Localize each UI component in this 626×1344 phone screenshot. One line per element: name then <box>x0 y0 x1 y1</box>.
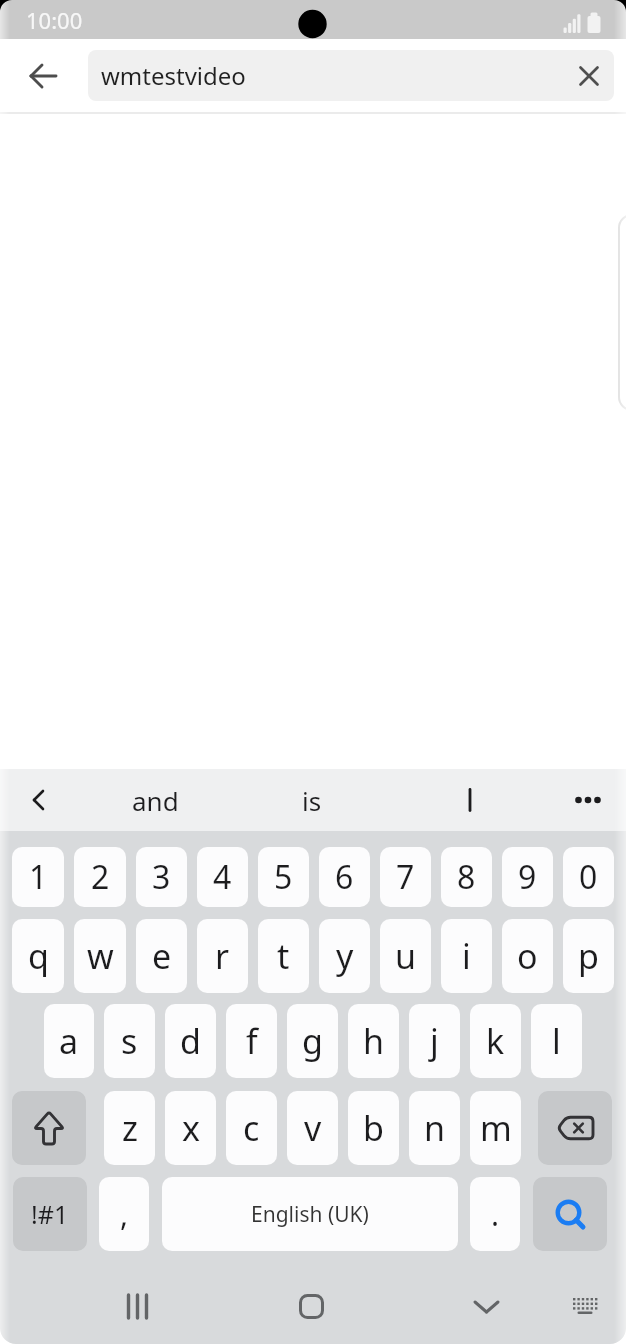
staticText: q <box>28 933 49 979</box>
button[interactable]: m <box>470 1091 521 1165</box>
button[interactable]: h <box>348 1004 399 1078</box>
button[interactable]: 2 <box>74 847 126 907</box>
staticText: 3 <box>152 855 171 899</box>
button[interactable]: a <box>44 1004 94 1078</box>
staticText: t <box>277 933 290 979</box>
staticText: 6 <box>335 855 354 899</box>
staticText: n <box>424 1105 446 1151</box>
button[interactable] <box>538 1091 612 1165</box>
button[interactable] <box>465 1285 509 1329</box>
button[interactable]: r <box>197 919 248 993</box>
staticText: e <box>152 933 172 979</box>
staticText: . <box>491 1194 500 1235</box>
staticText: c <box>243 1105 260 1151</box>
button[interactable]: d <box>165 1004 216 1078</box>
button[interactable]: y <box>319 919 370 993</box>
staticText: a <box>59 1018 79 1064</box>
staticText: i <box>462 933 471 979</box>
staticText: l <box>552 1018 561 1064</box>
staticText: 9 <box>518 855 537 899</box>
button[interactable]: 5 <box>258 847 309 907</box>
staticText: v <box>304 1105 322 1151</box>
button[interactable]: w <box>74 919 126 993</box>
button[interactable]: p <box>563 919 614 993</box>
button[interactable]: q <box>12 919 64 993</box>
button[interactable] <box>566 778 610 822</box>
staticText: 1 <box>29 855 48 899</box>
staticText: s <box>121 1018 138 1064</box>
staticText: 4 <box>213 855 232 899</box>
button[interactable]: t <box>258 919 309 993</box>
button[interactable]: 8 <box>441 847 492 907</box>
button[interactable]: 7 <box>380 847 431 907</box>
staticText: y <box>336 933 354 979</box>
button[interactable]: e <box>136 919 187 993</box>
staticText: j <box>430 1018 439 1064</box>
staticText: d <box>180 1018 201 1064</box>
button[interactable] <box>12 1091 86 1165</box>
staticText: w <box>87 933 114 979</box>
button[interactable]: s <box>104 1004 155 1078</box>
staticText: wmtestvideo <box>101 59 246 92</box>
button[interactable]: l <box>531 1004 582 1078</box>
button[interactable] <box>440 769 500 831</box>
staticText: !#1 <box>31 1197 69 1231</box>
button[interactable] <box>564 51 614 101</box>
button[interactable]: wmtestvideo <box>88 50 614 101</box>
staticText: g <box>302 1018 323 1064</box>
button[interactable]: 0 <box>563 847 614 907</box>
staticText: m <box>480 1105 512 1151</box>
staticText: b <box>363 1105 384 1151</box>
button[interactable]: x <box>165 1091 216 1165</box>
staticText: 8 <box>457 855 476 899</box>
staticText: 0 <box>579 855 598 899</box>
button[interactable]: o <box>502 919 553 993</box>
staticText: z <box>122 1105 138 1151</box>
staticText: 7 <box>396 855 415 899</box>
staticText: English (UK) <box>251 1200 369 1229</box>
button[interactable]: English (UK) <box>162 1177 458 1251</box>
button[interactable] <box>18 779 60 821</box>
button[interactable]: 3 <box>136 847 187 907</box>
button[interactable]: b <box>348 1091 399 1165</box>
staticText: h <box>363 1018 385 1064</box>
staticText: x <box>182 1105 200 1151</box>
staticText: 10:00 <box>26 5 83 35</box>
button[interactable] <box>563 1285 607 1329</box>
button[interactable]: and <box>95 769 215 831</box>
button[interactable]: 1 <box>12 847 64 907</box>
button[interactable]: v <box>287 1091 338 1165</box>
button[interactable]: u <box>380 919 431 993</box>
button[interactable]: 4 <box>197 847 248 907</box>
button[interactable]: n <box>409 1091 460 1165</box>
button[interactable]: 6 <box>319 847 370 907</box>
staticText: and <box>132 783 179 818</box>
button[interactable]: c <box>226 1091 277 1165</box>
staticText: o <box>517 933 538 979</box>
staticText: p <box>578 933 599 979</box>
staticText: 2 <box>91 855 110 899</box>
button[interactable]: z <box>104 1091 155 1165</box>
button[interactable]: is <box>252 769 372 831</box>
button[interactable] <box>533 1177 607 1251</box>
button[interactable] <box>0 39 88 112</box>
staticText: f <box>246 1018 258 1064</box>
button[interactable]: g <box>287 1004 338 1078</box>
button[interactable]: j <box>409 1004 460 1078</box>
button[interactable]: !#1 <box>13 1177 87 1251</box>
staticText: , <box>120 1194 129 1235</box>
staticText: is <box>302 783 322 818</box>
button[interactable]: f <box>226 1004 277 1078</box>
staticText: k <box>486 1018 505 1064</box>
button[interactable]: k <box>470 1004 521 1078</box>
button[interactable] <box>290 1285 334 1329</box>
staticText: 5 <box>274 855 293 899</box>
staticText: u <box>395 933 417 979</box>
button[interactable]: , <box>99 1177 149 1251</box>
button[interactable]: 9 <box>502 847 553 907</box>
button[interactable]: . <box>470 1177 520 1251</box>
button[interactable]: i <box>441 919 492 993</box>
button[interactable] <box>115 1285 159 1329</box>
staticText: r <box>215 933 230 979</box>
